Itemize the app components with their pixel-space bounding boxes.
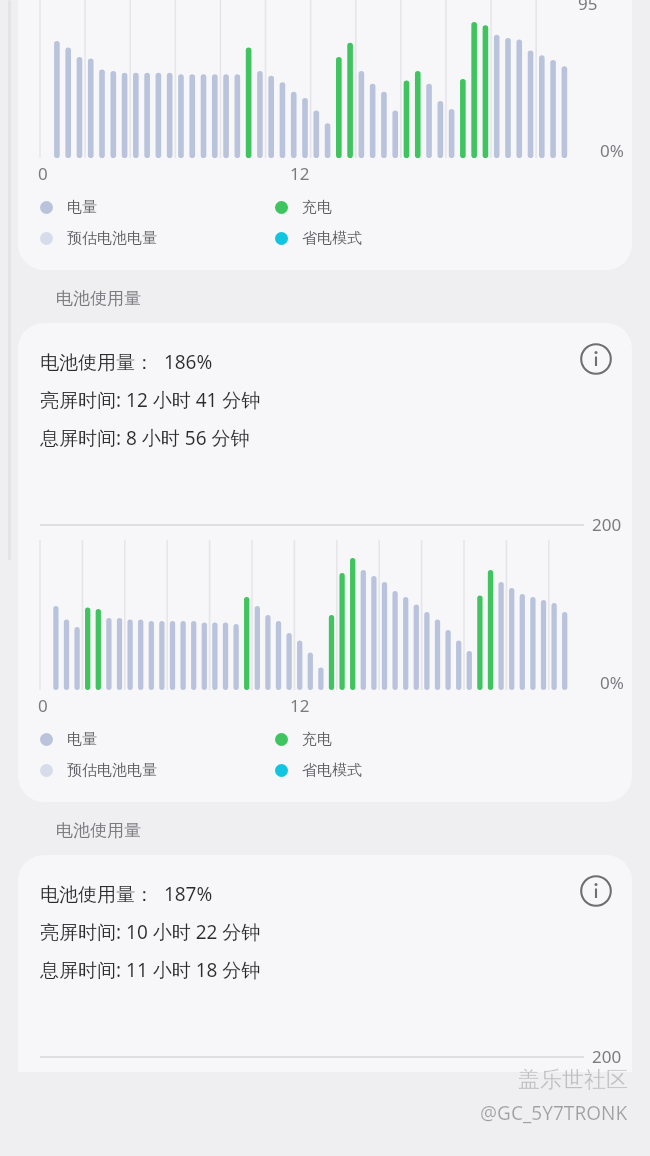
- button[interactable]: 电池使用量： 186%: [18, 323, 632, 540]
- staticText: 电量: [67, 730, 97, 749]
- staticText: 12: [290, 694, 310, 717]
- staticText: 充电: [302, 730, 332, 749]
- button[interactable]: More information: [576, 339, 616, 379]
- staticText: 95: [578, 0, 598, 15]
- staticText: 0: [38, 162, 48, 185]
- staticText: 省电模式: [302, 761, 362, 780]
- staticText: 0: [38, 694, 48, 717]
- staticText: 200: [592, 513, 622, 536]
- staticText: @GC_5Y7TRONK: [480, 1100, 628, 1126]
- staticText: 200: [592, 1045, 622, 1068]
- staticText: 亮屏时间: 10 小时 22 分钟: [40, 919, 261, 945]
- button[interactable]: More information: [576, 871, 616, 911]
- staticText: 电量: [67, 198, 97, 217]
- staticText: 息屏时间: 11 小时 18 分钟: [40, 957, 261, 983]
- staticText: 省电模式: [302, 229, 362, 248]
- staticText: 电池使用量： 187%: [40, 881, 213, 907]
- staticText: 0%: [600, 139, 624, 162]
- staticText: 息屏时间: 8 小时 56 分钟: [40, 425, 250, 451]
- button[interactable]: 0%: [18, 540, 632, 802]
- staticText: 盖乐世社区: [518, 1066, 628, 1094]
- staticText: 电池使用量: [56, 820, 141, 841]
- staticText: 0%: [600, 671, 624, 694]
- staticText: 预估电池电量: [67, 761, 157, 780]
- button[interactable]: 0%: [18, 0, 632, 270]
- staticText: 12: [290, 162, 310, 185]
- staticText: 充电: [302, 198, 332, 217]
- staticText: 电池使用量： 186%: [40, 349, 213, 375]
- staticText: 预估电池电量: [67, 229, 157, 248]
- button[interactable]: 电池使用量： 187%: [18, 855, 632, 1072]
- staticText: 电池使用量: [56, 288, 141, 309]
- staticText: 亮屏时间: 12 小时 41 分钟: [40, 387, 261, 413]
